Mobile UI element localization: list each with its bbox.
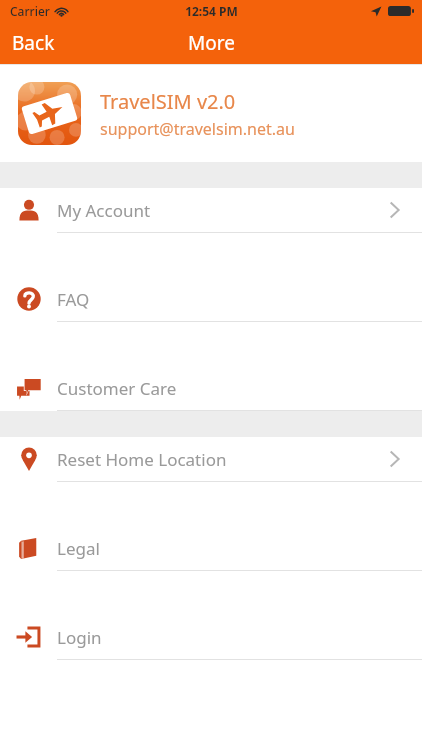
staticText: Reset Home Location xyxy=(57,448,227,471)
staticText: Carrier xyxy=(10,3,50,19)
button[interactable]: FAQ xyxy=(0,277,422,321)
staticText: 12:54 PM xyxy=(185,3,238,19)
button[interactable]: TravelSIM v2.0 xyxy=(0,65,422,162)
staticText: My Account xyxy=(57,199,151,222)
button[interactable]: Login xyxy=(0,615,422,659)
staticText: More xyxy=(188,30,235,56)
staticText: FAQ xyxy=(57,288,90,311)
staticText: Customer Care xyxy=(57,377,177,400)
button[interactable]: Customer Care xyxy=(0,366,422,410)
staticText: Legal xyxy=(57,537,100,560)
staticText: Back xyxy=(12,30,55,56)
staticText: Login xyxy=(57,626,102,649)
staticText: TravelSIM v2.0 xyxy=(100,88,236,115)
button[interactable]: Reset Home Location xyxy=(0,437,422,481)
staticText: support@travelsim.net.au xyxy=(100,118,295,140)
button[interactable]: Back xyxy=(0,24,67,62)
button[interactable]: My Account xyxy=(0,188,422,232)
button[interactable]: Legal xyxy=(0,526,422,570)
